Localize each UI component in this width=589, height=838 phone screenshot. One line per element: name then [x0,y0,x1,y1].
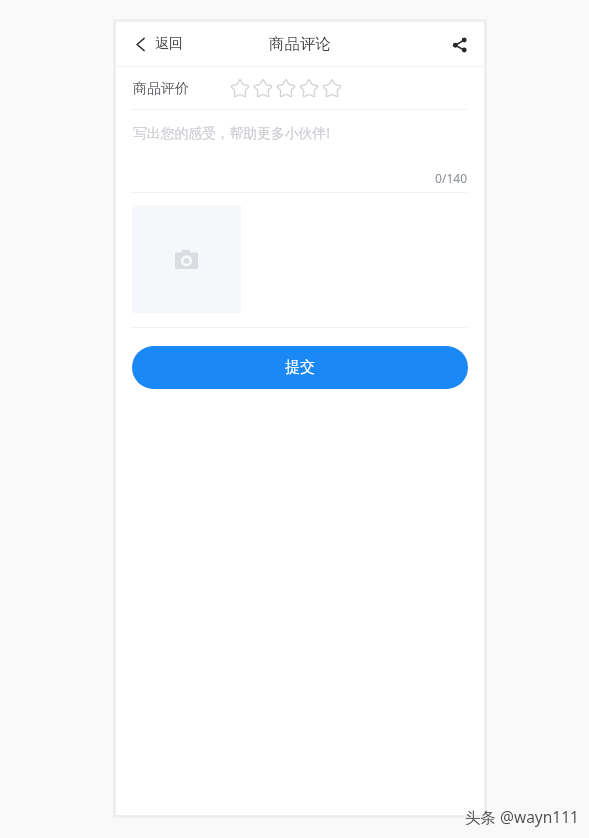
button[interactable]: Rate 4 of 5 stars [297,77,320,100]
button[interactable]: 提交 [132,346,468,389]
staticText: 提交 [285,358,315,377]
button[interactable]: Rate 2 of 5 stars [251,77,274,100]
staticText: 返回 [155,35,183,53]
staticText: 商品评价 [133,80,189,98]
button[interactable]: Rate 3 of 5 stars [274,77,297,100]
button[interactable]: Rate 1 of 5 stars [228,77,251,100]
staticText: 写出您的感受，帮助更多小伙伴! [133,123,330,142]
staticText: 头条 @wayn111 [465,806,579,827]
button[interactable]: Add photo [132,205,241,313]
button[interactable]: Share [448,32,472,56]
button[interactable]: Write your review [116,110,484,192]
staticText: 商品评论 [269,34,331,54]
button[interactable]: Rate 5 of 5 stars [320,77,343,100]
staticText: 0/140 [116,170,467,186]
button[interactable]: 返回 [134,35,183,53]
